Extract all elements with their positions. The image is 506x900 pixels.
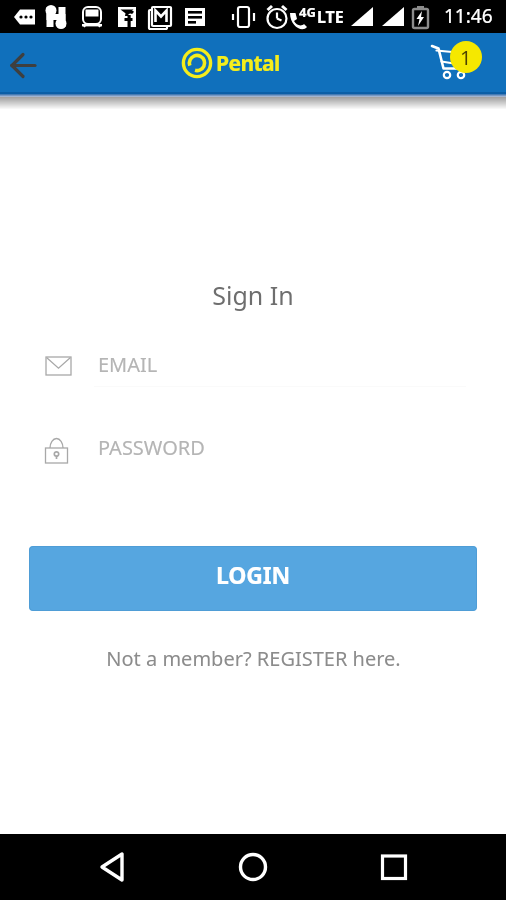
button[interactable]: Back [85, 839, 141, 895]
button[interactable]: Recent apps [366, 839, 422, 895]
staticText: PASSWORD [98, 434, 205, 461]
staticText: Sign In [0, 278, 506, 312]
staticText: EMAIL [98, 351, 158, 378]
button[interactable]: Back [0, 39, 48, 87]
staticText: LOGIN [216, 559, 290, 590]
staticText: 1 [460, 44, 472, 71]
staticText: Not a member? REGISTER here. [106, 645, 401, 672]
staticText: 11:46 [444, 3, 493, 29]
staticText: LTE [317, 6, 344, 28]
button[interactable]: Not a member? REGISTER here. [0, 645, 506, 672]
staticText: 4G [299, 3, 316, 21]
button[interactable]: LOGIN [29, 546, 477, 611]
button[interactable]: Shopping cart [425, 37, 485, 96]
button[interactable]: Home [225, 839, 281, 895]
staticText: Pental [216, 49, 280, 78]
